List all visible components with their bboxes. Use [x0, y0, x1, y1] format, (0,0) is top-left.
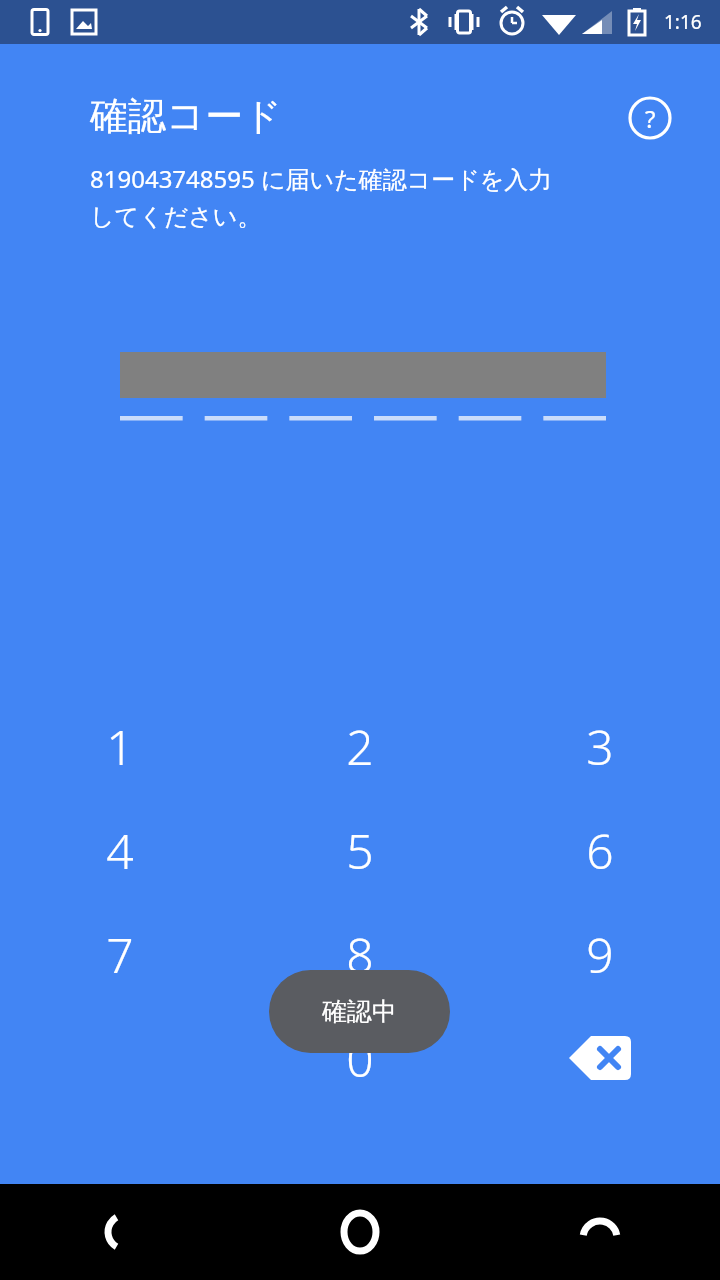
staticText: 5 — [346, 818, 374, 883]
button[interactable]: 5 — [240, 798, 480, 902]
button[interactable]: 7 — [0, 902, 240, 1006]
staticText: 7 — [106, 922, 134, 987]
staticText: 2 — [346, 714, 374, 779]
staticText: 9 — [586, 922, 614, 987]
button[interactable]: 1 — [0, 694, 240, 798]
button[interactable]: ヘルプ — [620, 88, 680, 148]
button[interactable]: 2 — [240, 694, 480, 798]
staticText: 6 — [586, 818, 614, 883]
button[interactable]: 0 — [240, 1006, 480, 1110]
staticText: 3 — [586, 714, 614, 779]
staticText: 1 — [106, 714, 134, 779]
staticText: 8 — [346, 922, 374, 987]
button[interactable]: 削除 — [480, 1006, 720, 1110]
button[interactable]: 戻る — [0, 1184, 240, 1280]
staticText: 1:16 — [664, 9, 702, 35]
staticText: ? — [645, 102, 656, 135]
staticText: 0 — [346, 1026, 374, 1091]
staticText: 確認中 — [322, 996, 397, 1027]
button[interactable]: 6 — [480, 798, 720, 902]
button[interactable]: 9 — [480, 902, 720, 1006]
button[interactable]: 最近のアプリ — [480, 1184, 720, 1280]
staticText: 819043748595 に届いた確認コードを入力 してください。 — [90, 162, 620, 233]
button[interactable]: ホーム — [240, 1184, 480, 1280]
button[interactable]: 4 — [0, 798, 240, 902]
button[interactable]: 3 — [480, 694, 720, 798]
staticText: 確認コード — [90, 92, 282, 140]
button[interactable]: 8 — [240, 902, 480, 1006]
staticText: 4 — [106, 818, 134, 883]
